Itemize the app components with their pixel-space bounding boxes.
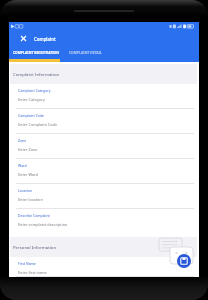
staticText: Complaint Information [13, 71, 60, 77]
staticText: Zone [18, 138, 27, 143]
button[interactable]: Complaint Code [10, 109, 197, 134]
button[interactable]: Save [177, 254, 191, 268]
button[interactable]: Close [18, 33, 29, 44]
staticText: Location [18, 188, 32, 193]
staticText: COMPLAINT DETAIL [69, 50, 102, 55]
staticText: Describe Complaint [18, 213, 50, 218]
staticText: Complaint Code [18, 113, 45, 118]
staticText: Enter complaint description [18, 222, 68, 227]
staticText: Complaint Category [18, 88, 51, 93]
button[interactable]: Ward [10, 159, 197, 184]
staticText: Enter first name [18, 270, 47, 275]
button[interactable]: First Name [10, 257, 197, 277]
staticText: Enter Zone [18, 147, 38, 152]
staticText: Enter location [18, 197, 43, 202]
staticText: Personal Information [13, 244, 57, 250]
button[interactable]: Location [10, 184, 197, 209]
staticText: Enter Ward [18, 172, 38, 177]
button[interactable]: COMPLAINT DETAIL [62, 45, 108, 59]
button[interactable]: COMPLAINT REGISTRATION [11, 45, 62, 59]
button[interactable]: Complaint Category [10, 84, 197, 109]
staticText: First Name [18, 261, 36, 266]
staticText: Ward [18, 163, 27, 168]
staticText: COMPLAINT REGISTRATION [13, 50, 60, 55]
staticText: Complaint [34, 36, 56, 42]
button[interactable]: Describe Complaint [10, 209, 197, 234]
staticText: Enter Complaint Code [18, 122, 58, 127]
button[interactable]: Zone [10, 134, 197, 159]
staticText: Enter Category [18, 97, 45, 102]
